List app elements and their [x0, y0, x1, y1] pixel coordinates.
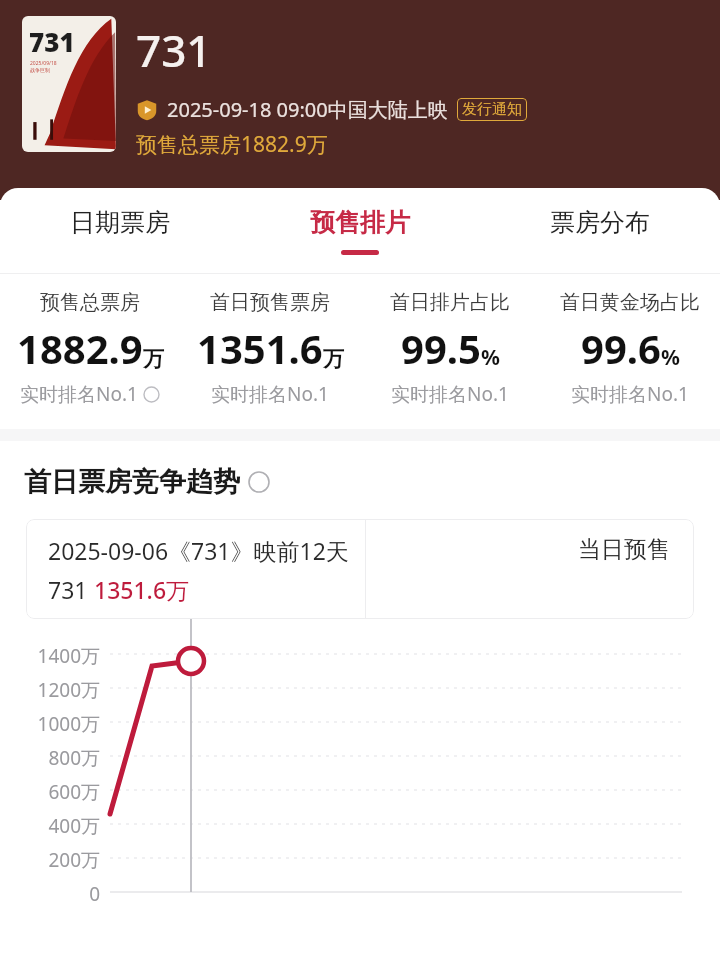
staticText: % — [661, 343, 680, 372]
staticText: 2025-09-06《731》映前12天 — [48, 535, 349, 566]
staticText: 200万 — [0, 847, 100, 873]
staticText: 2025-09-18 09:00中国大陆上映 — [167, 96, 448, 123]
staticText: 99.5 — [401, 321, 481, 375]
staticText: 实时排名No.1 — [391, 381, 509, 407]
button[interactable]: 预售总票房 — [0, 290, 180, 407]
button[interactable]: 首日排片占比 — [360, 290, 540, 407]
button[interactable]: 首日票房竞争趋势 — [24, 465, 720, 499]
staticText: 1200万 — [0, 677, 100, 703]
staticText: 首日排片占比 — [390, 290, 510, 315]
staticText: 战争巨制 — [30, 67, 50, 73]
button[interactable]: 发行通知 — [457, 98, 527, 121]
staticText: 实时排名No.1 — [211, 381, 329, 407]
staticText: 1351.6 — [197, 321, 323, 375]
staticText: 实时排名No.1 — [20, 381, 138, 407]
staticText: 实时排名No.1 — [571, 381, 689, 407]
staticText: 0 — [0, 881, 100, 907]
staticText: 731 — [136, 20, 212, 80]
staticText: 预售排片 — [310, 207, 410, 238]
staticText: % — [481, 343, 500, 372]
staticText: 万 — [323, 346, 344, 372]
staticText: 600万 — [0, 779, 100, 805]
staticText: 发行通知 — [462, 100, 522, 119]
staticText: 731 — [48, 574, 94, 605]
staticText: 当日预售 — [578, 535, 670, 564]
button[interactable]: 首日预售票房 — [180, 290, 360, 407]
staticText: 万 — [143, 346, 164, 372]
staticText: 预售总票房1882.9万 — [136, 130, 328, 159]
staticText: 票房分布 — [550, 207, 650, 238]
staticText: 1882.9 — [17, 321, 143, 375]
button[interactable]: 首日黄金场占比 — [540, 290, 720, 407]
staticText: 日期票房 — [70, 207, 170, 238]
button[interactable]: 日期票房 — [0, 188, 240, 273]
staticText: 首日票房竞争趋势 — [24, 465, 240, 499]
staticText: 1000万 — [0, 711, 100, 737]
staticText: 800万 — [0, 745, 100, 771]
button[interactable]: 731 — [22, 16, 116, 152]
other: Verified — [136, 99, 158, 121]
staticText: 400万 — [0, 813, 100, 839]
button[interactable]: 预售排片 — [240, 188, 480, 273]
button[interactable]: 票房分布 — [480, 188, 720, 273]
other: Info — [248, 471, 270, 493]
staticText: 731 — [29, 24, 75, 59]
staticText: 2025/09/18 — [30, 60, 57, 67]
staticText: 首日黄金场占比 — [560, 290, 700, 315]
staticText: 1351.6万 — [94, 574, 190, 605]
staticText: 99.6 — [581, 321, 661, 375]
button[interactable]: 2025-09-06《731》映前12天 — [26, 519, 694, 619]
staticText: 首日预售票房 — [210, 290, 330, 315]
staticText: 1400万 — [0, 643, 100, 669]
staticText: 预售总票房 — [40, 290, 140, 315]
